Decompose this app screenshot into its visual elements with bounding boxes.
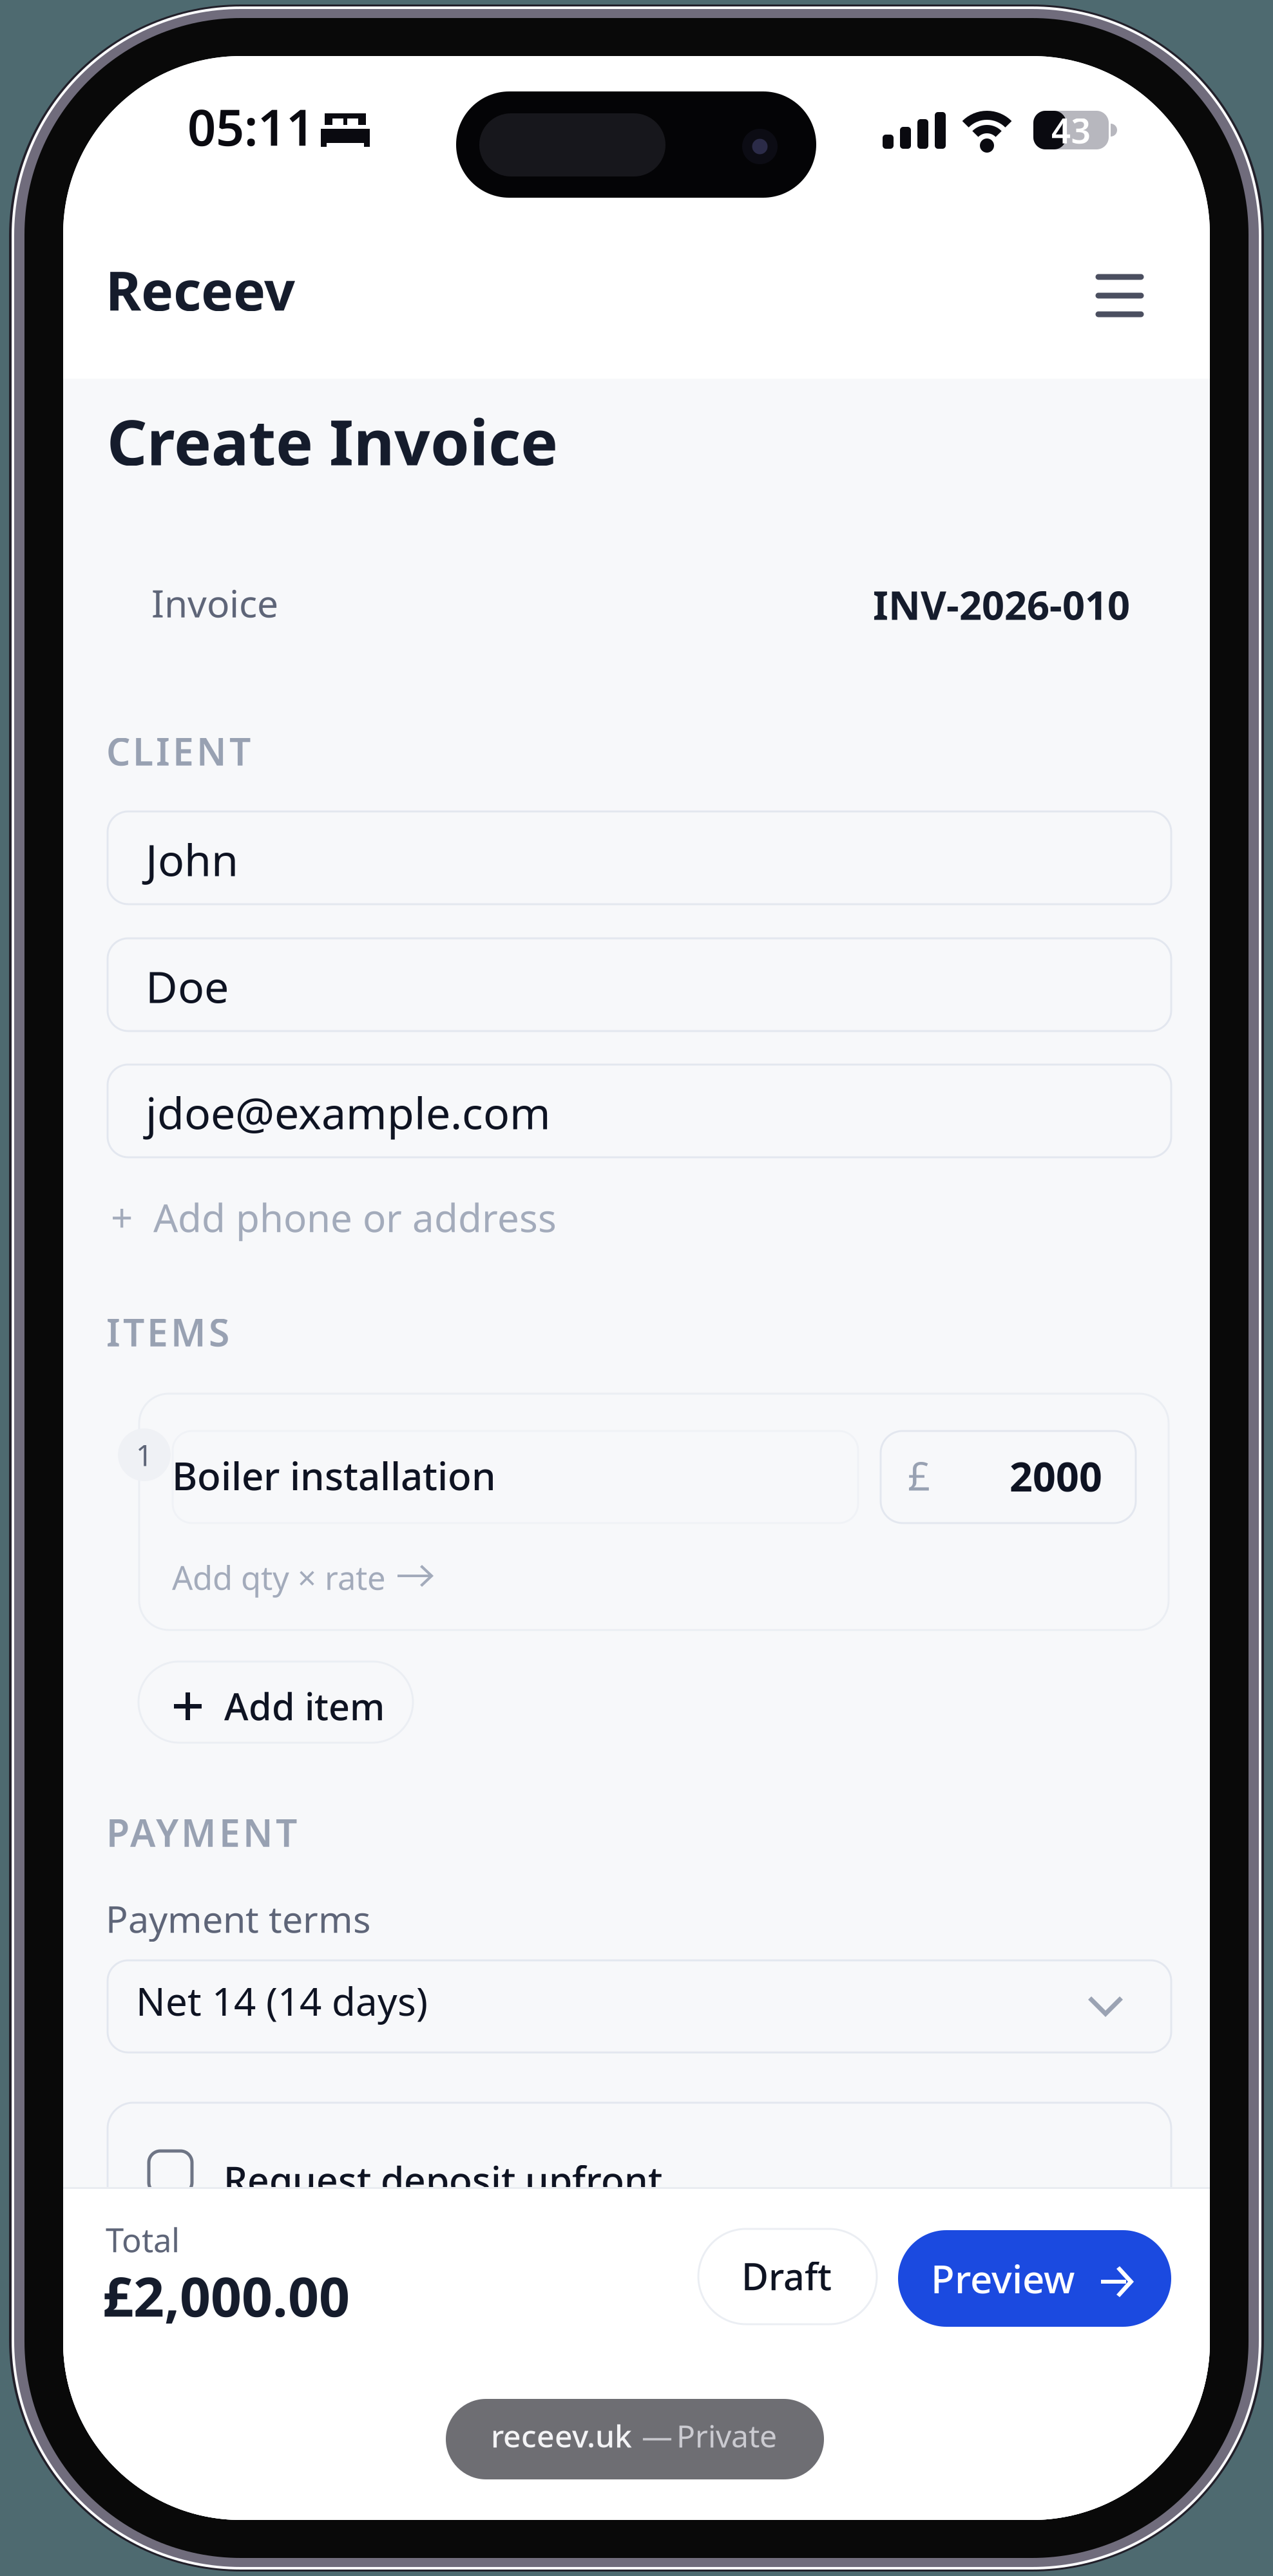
button[interactable]: + Add phone or address [63,1188,557,1246]
staticText: Receev [106,254,295,326]
staticText: receev.uk [491,2415,632,2456]
staticText: 43 [1051,107,1091,153]
button[interactable]: Preview [898,2230,1171,2327]
button[interactable]: Menu [1075,251,1165,341]
staticText: + Add phone or address [111,1192,557,1243]
staticText: Request deposit upfront [224,2154,662,2204]
staticText: Create Invoice [107,399,558,483]
staticText: 1 [136,1435,153,1474]
staticText: 2000 [1010,1449,1102,1503]
button[interactable]: Add item [139,1662,413,1743]
staticText: — [642,2415,673,2456]
staticText: Add item [224,1681,385,1730]
staticText: John [146,830,238,888]
staticText: ITEMS [106,1307,229,1357]
staticText: CLIENT [106,726,251,776]
staticText: Add qty × rate [172,1556,386,1599]
button[interactable]: Net 14 (14 days) [108,1960,1171,2052]
staticText: Payment terms [106,1894,370,1943]
staticText: Invoice [151,578,278,628]
button[interactable]: Request deposit upfront [108,2103,1171,2251]
staticText: Total [106,2218,180,2261]
staticText: INV-2026-010 [873,578,1130,631]
staticText: Net 14 (14 days) [136,1975,428,2026]
staticText: Private [676,2415,777,2456]
staticText: Preview [931,2253,1075,2304]
button[interactable]: Draft [698,2229,877,2324]
staticText: Draft [742,2251,832,2300]
staticText: Boiler installation [172,1450,496,1501]
staticText: jdoe@example.com [146,1083,551,1141]
staticText: £ [908,1449,930,1501]
staticText: 05:11 [187,93,314,160]
staticText: £2,000.00 [102,2260,350,2332]
staticText: Doe [146,957,229,1015]
staticText: PAYMENT [106,1807,297,1857]
button[interactable]: Add qty × rate [141,1548,592,1606]
